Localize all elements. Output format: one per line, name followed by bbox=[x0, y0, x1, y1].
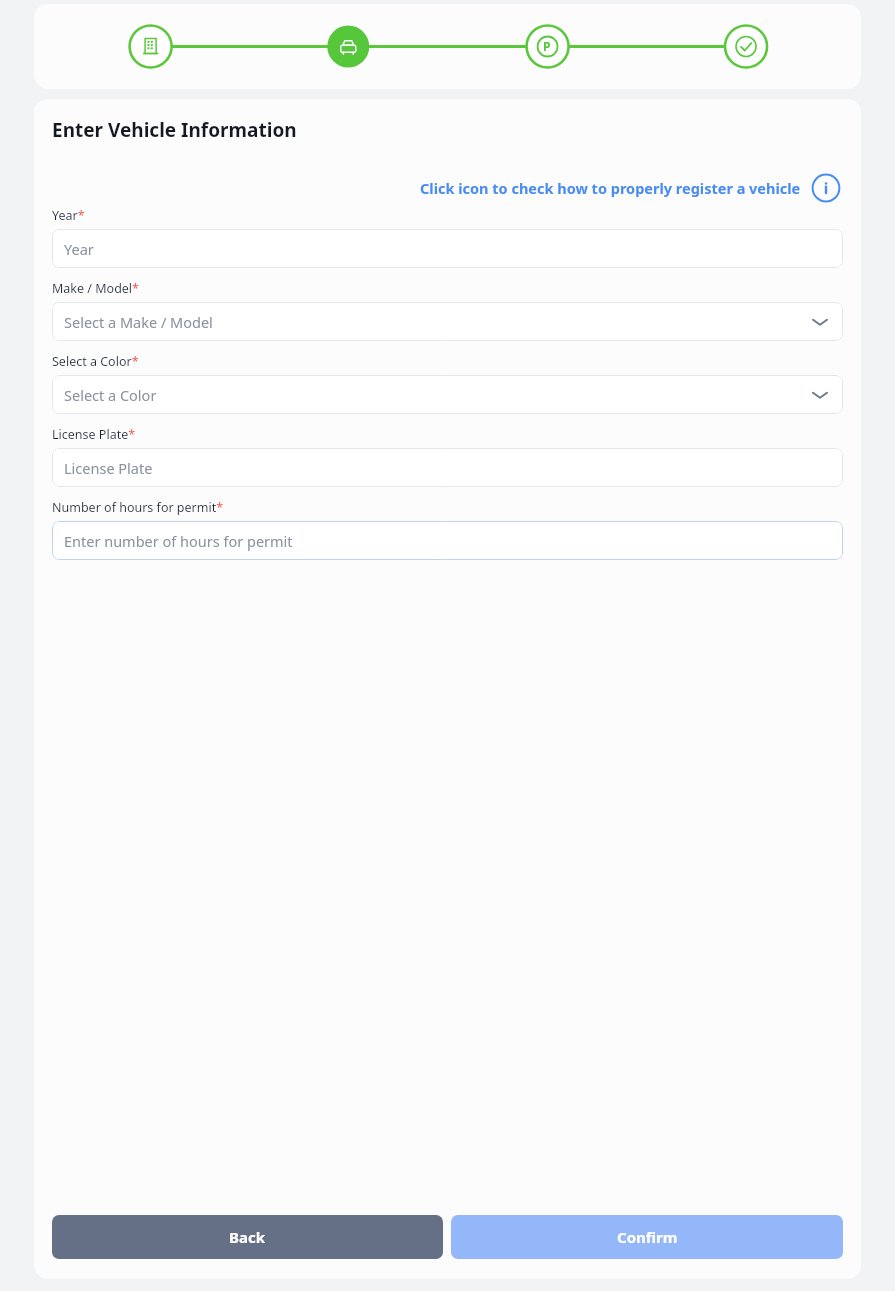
staticText: Confirm bbox=[617, 1227, 678, 1247]
staticText: Enter number of hours for permit bbox=[64, 531, 293, 551]
other: Information bbox=[809, 171, 843, 205]
staticText: Click icon to check how to properly regi… bbox=[420, 178, 801, 198]
button[interactable]: Year bbox=[52, 229, 843, 268]
staticText: Select a Color bbox=[64, 385, 157, 405]
staticText: Select a Color* bbox=[52, 353, 139, 370]
button[interactable]: Confirm bbox=[451, 1215, 843, 1259]
staticText: License Plate bbox=[64, 458, 153, 478]
button[interactable]: Select a Make / Model bbox=[52, 302, 843, 341]
staticText: Year* bbox=[52, 207, 85, 224]
staticText: Make / Model* bbox=[52, 280, 139, 297]
button[interactable]: Back bbox=[52, 1215, 443, 1259]
button[interactable]: Enter number of hours for permit bbox=[52, 521, 843, 560]
staticText: Select a Make / Model bbox=[64, 312, 213, 332]
staticText: Year bbox=[64, 239, 94, 259]
staticText: Back bbox=[229, 1227, 266, 1247]
button[interactable]: License Plate bbox=[52, 448, 843, 487]
staticText: P bbox=[543, 38, 551, 54]
staticText: License Plate* bbox=[52, 426, 136, 443]
button[interactable]: Select a Color bbox=[52, 375, 843, 414]
staticText: Enter Vehicle Information bbox=[52, 117, 297, 143]
staticText: Number of hours for permit* bbox=[52, 499, 224, 516]
button[interactable]: Click icon to check how to properly regi… bbox=[52, 171, 843, 205]
